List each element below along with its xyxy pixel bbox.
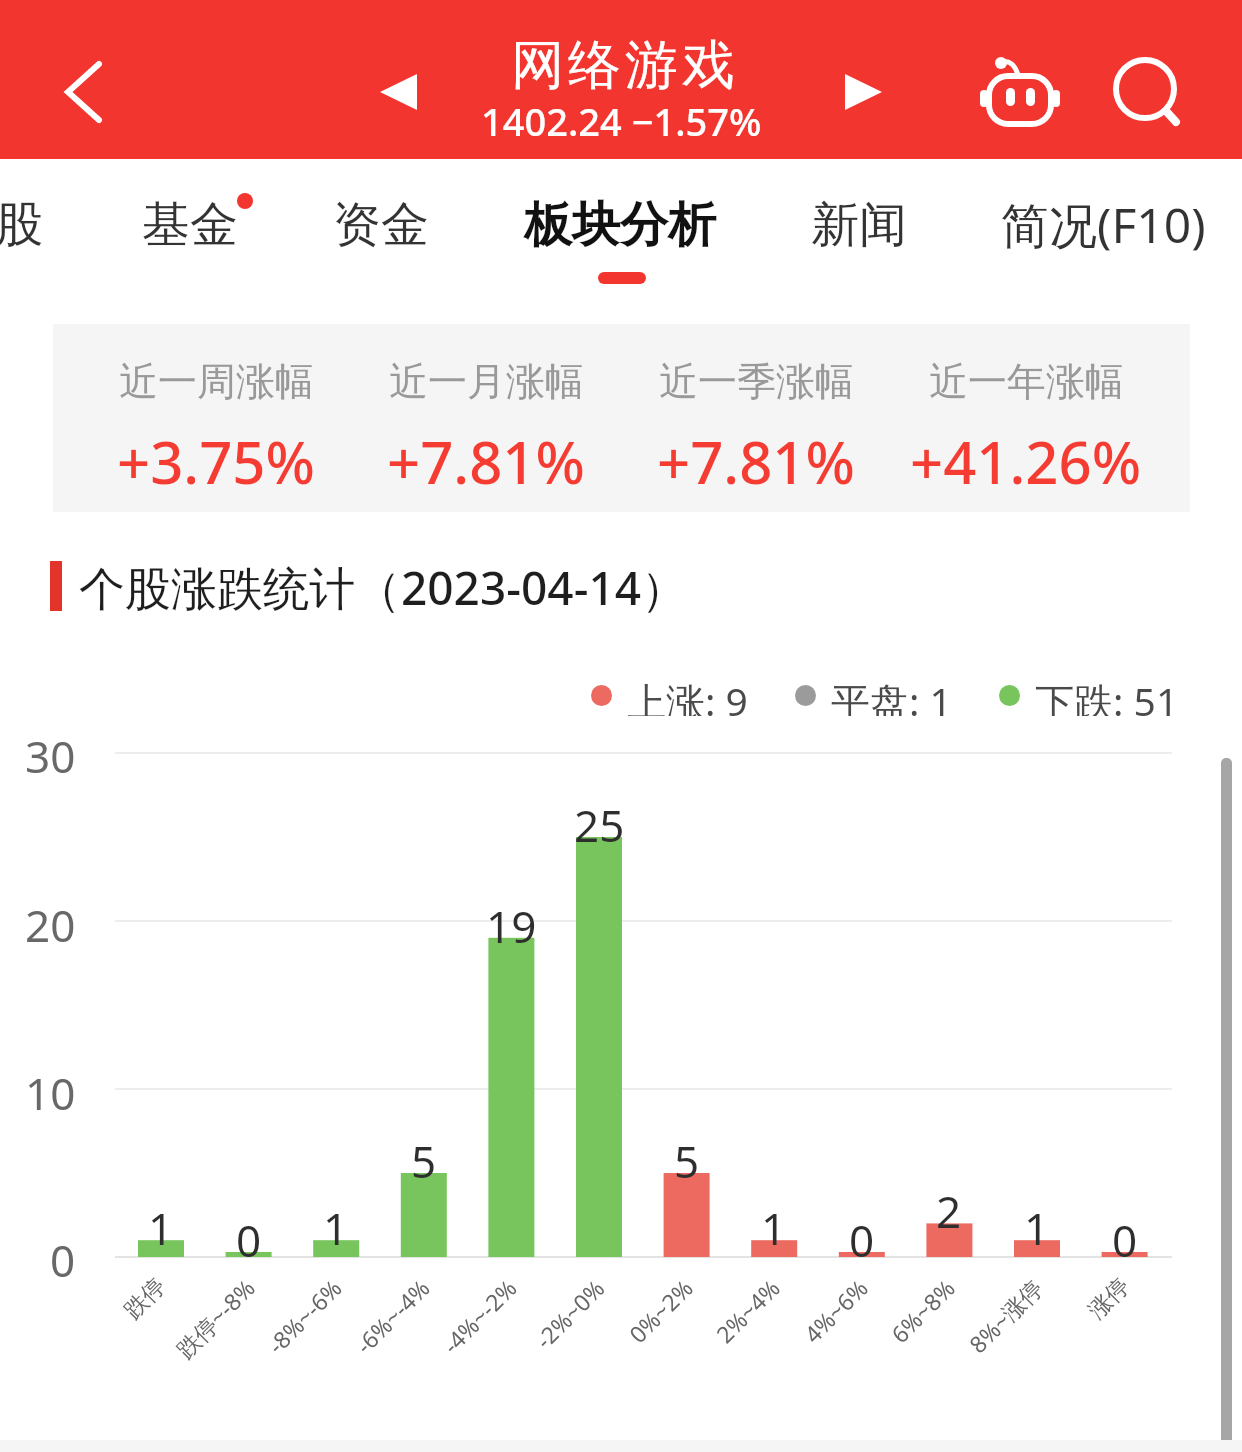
button[interactable]	[825, 56, 901, 128]
button[interactable]: 板块分析	[490, 180, 750, 270]
staticText: 0%~2%	[622, 1272, 699, 1349]
staticText: 2	[936, 1181, 962, 1233]
staticText: 30	[25, 726, 76, 780]
button[interactable]: 资金	[281, 180, 481, 270]
button[interactable]: 简况(F10)	[963, 180, 1242, 270]
staticText: 资金	[333, 195, 429, 255]
staticText: 个股涨跌统计（2023-04-14）	[79, 556, 688, 616]
staticText: 近一季涨幅	[659, 357, 854, 405]
staticText: 下跌: 51	[1035, 674, 1179, 716]
staticText: 跌停~-8%	[169, 1272, 261, 1364]
button[interactable]	[48, 44, 120, 140]
staticText: +7.81%	[387, 422, 585, 488]
staticText: 涨停	[1082, 1272, 1135, 1325]
staticText: 基金	[142, 195, 238, 255]
staticText: +7.81%	[657, 422, 855, 488]
staticText: 股	[0, 195, 43, 255]
staticText: 0	[1112, 1210, 1138, 1262]
staticText: 1	[323, 1198, 349, 1250]
staticText: 0	[50, 1230, 76, 1284]
staticText: 0	[849, 1210, 875, 1262]
staticText: +3.75%	[117, 422, 315, 488]
button[interactable]: 股	[0, 180, 79, 270]
staticText: 5	[411, 1131, 437, 1183]
staticText: 1402.24 −1.57%	[481, 95, 762, 139]
staticText: 上涨: 9	[627, 674, 748, 716]
staticText: +41.26%	[910, 422, 1142, 488]
staticText: 近一月涨幅	[389, 357, 584, 405]
staticText: -8%~-6%	[260, 1272, 348, 1360]
staticText: 网络游戏	[509, 32, 737, 96]
staticText: -2%~0%	[528, 1272, 611, 1355]
staticText: 0	[236, 1210, 262, 1262]
staticText: 平盘: 1	[831, 674, 952, 716]
staticText: 板块分析	[524, 195, 716, 255]
button[interactable]: 基金	[90, 180, 290, 270]
staticText: 6%~8%	[884, 1272, 961, 1349]
staticText: -4%~-2%	[435, 1272, 523, 1360]
staticText: 8%~涨停	[962, 1272, 1049, 1359]
staticText: 10	[25, 1063, 76, 1117]
button[interactable]	[972, 48, 1068, 136]
staticText: 近一周涨幅	[119, 357, 314, 405]
button[interactable]	[360, 56, 436, 128]
staticText: 1	[1024, 1198, 1050, 1250]
staticText: -6%~-4%	[348, 1272, 436, 1360]
staticText: 20	[25, 895, 76, 949]
staticText: 跌停	[118, 1272, 171, 1325]
staticText: 新闻	[811, 195, 907, 255]
staticText: 4%~6%	[797, 1272, 874, 1349]
staticText: 1	[761, 1198, 787, 1250]
staticText: 1	[148, 1198, 174, 1250]
staticText: 25	[574, 795, 625, 847]
staticText: 19	[486, 896, 537, 948]
button[interactable]: 新闻	[759, 180, 959, 270]
staticText: 2%~4%	[709, 1272, 786, 1349]
staticText: 简况(F10)	[1001, 192, 1206, 258]
staticText: 近一年涨幅	[929, 357, 1124, 405]
staticText: 5	[674, 1131, 700, 1183]
button[interactable]	[1108, 50, 1188, 134]
